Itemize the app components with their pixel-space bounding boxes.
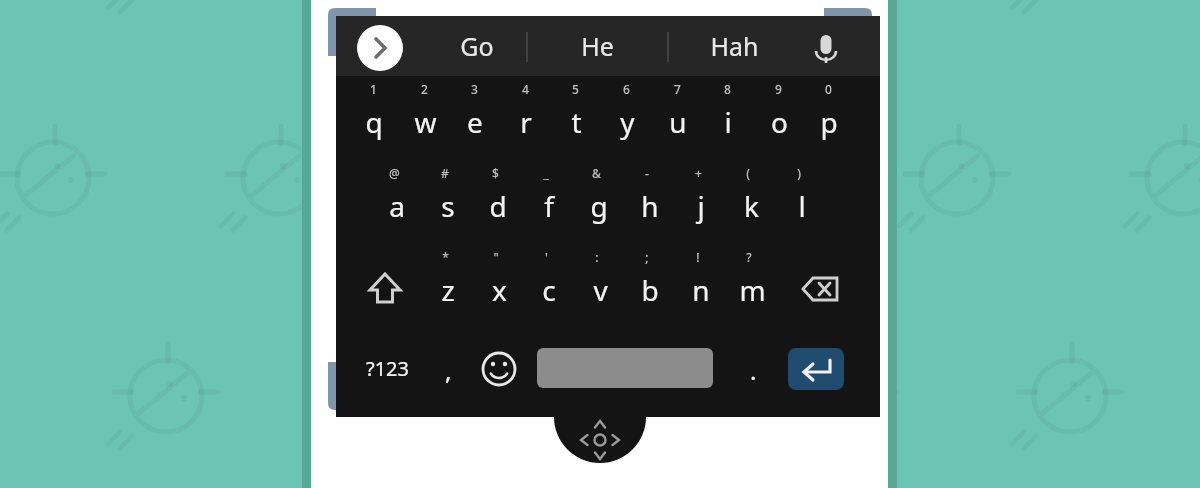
staticText: & bbox=[592, 165, 601, 181]
button[interactable]: 3 bbox=[450, 80, 500, 152]
staticText: ; bbox=[645, 249, 649, 265]
staticText: y bbox=[620, 103, 635, 141]
staticText: z bbox=[441, 271, 455, 309]
staticText: ( bbox=[746, 165, 750, 181]
staticText: u bbox=[669, 103, 687, 141]
button[interactable]: $ bbox=[473, 164, 523, 236]
button[interactable]: ( bbox=[726, 164, 776, 236]
button[interactable]: He bbox=[527, 16, 668, 76]
staticText: ) bbox=[797, 165, 801, 181]
button[interactable]: ? bbox=[727, 248, 777, 320]
button[interactable]: 8 bbox=[703, 80, 753, 152]
button[interactable]: Shift bbox=[360, 264, 410, 314]
staticText: h bbox=[641, 187, 659, 225]
staticText: c bbox=[542, 271, 556, 309]
button[interactable]: & bbox=[574, 164, 624, 236]
staticText: f bbox=[544, 187, 554, 225]
staticText: 1 bbox=[370, 81, 377, 97]
button[interactable]: 9 bbox=[754, 80, 804, 152]
button[interactable]: - bbox=[625, 164, 675, 236]
staticText: x bbox=[492, 271, 507, 309]
button[interactable]: ! bbox=[676, 248, 726, 320]
staticText: r bbox=[520, 103, 532, 141]
staticText: 7 bbox=[674, 81, 681, 97]
button[interactable]: @ bbox=[372, 164, 422, 236]
staticText: ?123 bbox=[366, 355, 409, 382]
button[interactable]: Period bbox=[735, 352, 771, 388]
button[interactable]: Enter bbox=[788, 348, 844, 390]
button[interactable]: 5 bbox=[551, 80, 601, 152]
button[interactable]: Go bbox=[427, 16, 527, 76]
button[interactable]: Space bbox=[537, 348, 713, 388]
staticText: ! bbox=[696, 249, 700, 265]
staticText: 0 bbox=[825, 81, 832, 97]
staticText: k bbox=[744, 187, 759, 225]
staticText: w bbox=[414, 103, 437, 141]
button[interactable]: 2 bbox=[400, 80, 450, 152]
button[interactable]: : bbox=[575, 248, 625, 320]
staticText: m bbox=[739, 271, 766, 309]
staticText: g bbox=[590, 187, 608, 225]
staticText: * bbox=[442, 249, 449, 265]
staticText: Go bbox=[460, 29, 494, 63]
staticText: 5 bbox=[572, 81, 579, 97]
staticText: 8 bbox=[724, 81, 731, 97]
staticText: 3 bbox=[471, 81, 478, 97]
staticText: o bbox=[771, 103, 788, 141]
staticText: s bbox=[441, 187, 455, 225]
button[interactable]: 1 bbox=[349, 80, 399, 152]
button[interactable]: ' bbox=[524, 248, 574, 320]
button[interactable]: # bbox=[423, 164, 473, 236]
button[interactable]: 6 bbox=[602, 80, 652, 152]
button[interactable]: Hah bbox=[668, 16, 800, 76]
staticText: j bbox=[697, 187, 705, 225]
staticText: + bbox=[695, 165, 702, 181]
button[interactable]: ?123 bbox=[352, 346, 422, 390]
staticText: b bbox=[641, 271, 659, 309]
button[interactable]: + bbox=[676, 164, 726, 236]
button[interactable]: 0 bbox=[804, 80, 854, 152]
staticText: . bbox=[750, 354, 757, 387]
button[interactable]: Emoji bbox=[480, 350, 518, 388]
staticText: l bbox=[798, 187, 806, 225]
staticText: " bbox=[493, 249, 499, 265]
button[interactable]: Expand suggestions bbox=[357, 25, 403, 71]
button[interactable]: ; bbox=[625, 248, 675, 320]
button[interactable]: " bbox=[474, 248, 524, 320]
button[interactable]: 4 bbox=[501, 80, 551, 152]
button[interactable]: Voice input bbox=[802, 24, 850, 72]
staticText: n bbox=[692, 271, 710, 309]
staticText: 9 bbox=[775, 81, 782, 97]
button[interactable]: 7 bbox=[653, 80, 703, 152]
staticText: , bbox=[445, 354, 452, 387]
staticText: p bbox=[820, 103, 838, 141]
staticText: Hah bbox=[710, 29, 759, 63]
staticText: d bbox=[489, 187, 507, 225]
staticText: 2 bbox=[421, 81, 428, 97]
staticText: # bbox=[441, 165, 449, 181]
staticText: 4 bbox=[522, 81, 529, 97]
staticText: i bbox=[724, 103, 732, 141]
staticText: @ bbox=[389, 165, 400, 181]
staticText: $ bbox=[492, 165, 499, 181]
button[interactable]: Comma bbox=[430, 352, 466, 388]
staticText: q bbox=[365, 103, 383, 141]
staticText: 6 bbox=[623, 81, 630, 97]
staticText: _ bbox=[543, 165, 549, 181]
staticText: He bbox=[581, 29, 614, 63]
button[interactable]: ) bbox=[777, 164, 827, 236]
staticText: e bbox=[467, 103, 483, 141]
staticText: t bbox=[571, 103, 582, 141]
button[interactable]: _ bbox=[524, 164, 574, 236]
staticText: - bbox=[645, 165, 649, 181]
button[interactable]: * bbox=[423, 248, 473, 320]
staticText: v bbox=[593, 271, 608, 309]
staticText: ? bbox=[746, 249, 752, 265]
button[interactable]: Backspace bbox=[795, 264, 845, 314]
staticText: ' bbox=[545, 249, 548, 265]
button[interactable]: Move keyboard bbox=[578, 418, 622, 462]
staticText: a bbox=[389, 187, 405, 225]
staticText: : bbox=[595, 249, 599, 265]
